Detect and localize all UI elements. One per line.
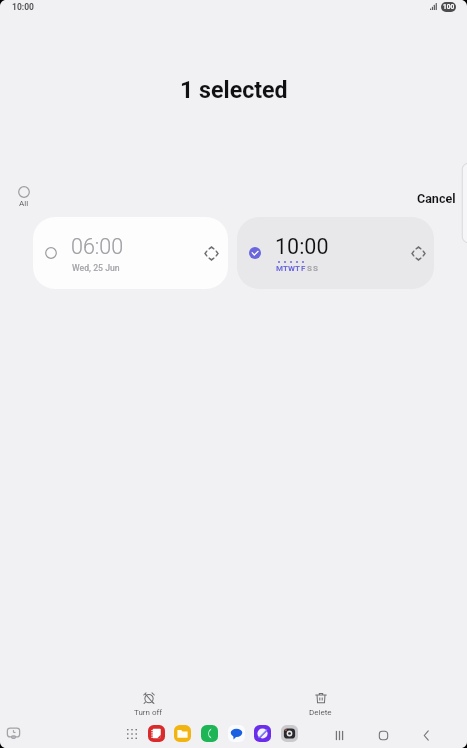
staticText: 06:00 (71, 234, 124, 259)
staticText: M (276, 264, 282, 273)
button[interactable]: Reorder (199, 241, 223, 265)
staticText: 10:00 (12, 2, 34, 12)
staticText: 100 (443, 3, 455, 11)
staticText: Turn off (134, 708, 163, 717)
button[interactable]: Reorder (406, 241, 430, 265)
button[interactable]: App (174, 725, 191, 742)
staticText: Wed, 25 Jun (72, 263, 120, 273)
button[interactable]: Turn off (116, 686, 180, 720)
button[interactable]: All (18, 186, 30, 208)
staticText: 1 selected (180, 76, 288, 103)
button[interactable]: Apps (125, 727, 138, 740)
button[interactable]: Back (415, 724, 437, 746)
staticText: All (19, 199, 29, 208)
button[interactable]: App (228, 725, 245, 742)
button[interactable]: App (281, 725, 298, 742)
button[interactable]: App (201, 725, 218, 742)
button[interactable]: App (148, 725, 165, 742)
button[interactable]: Clock (5, 725, 22, 742)
staticText: T (295, 264, 300, 273)
button[interactable]: Delete (288, 686, 352, 720)
button[interactable]: Recents (328, 724, 350, 746)
button[interactable]: Cancel (413, 188, 460, 209)
staticText: S (307, 264, 312, 273)
staticText: F (301, 264, 306, 273)
staticText: T (283, 264, 288, 273)
button[interactable]: 10:00 (237, 217, 434, 289)
staticText: Delete (309, 708, 332, 717)
button[interactable]: Home (372, 724, 394, 746)
staticText: S (313, 264, 318, 273)
button[interactable]: App (254, 725, 271, 742)
button[interactable]: 06:00 (33, 217, 228, 289)
staticText: Cancel (417, 191, 456, 206)
staticText: 10:00 (275, 234, 329, 259)
staticText: W (288, 264, 294, 273)
